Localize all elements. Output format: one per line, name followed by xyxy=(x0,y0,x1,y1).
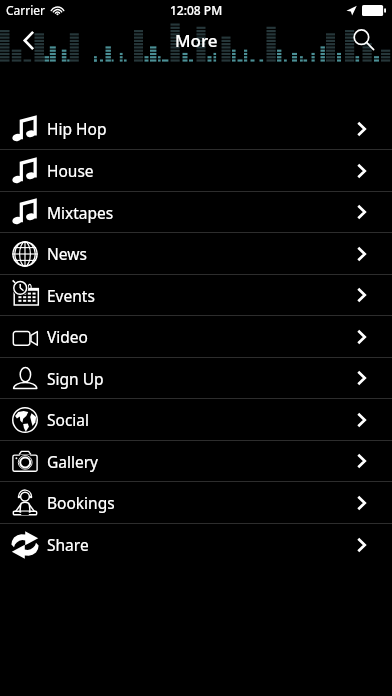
staticText: Social xyxy=(47,409,90,430)
button[interactable]: Hip Hop xyxy=(0,108,392,150)
button[interactable]: Back xyxy=(0,20,52,64)
staticText: 12:08 PM xyxy=(170,2,223,18)
staticText: Events xyxy=(47,285,95,306)
staticText: Bookings xyxy=(47,492,115,513)
button[interactable]: News xyxy=(0,233,392,275)
button[interactable]: Social xyxy=(0,399,392,441)
staticText: Share xyxy=(47,534,89,555)
button[interactable]: Bookings xyxy=(0,482,392,524)
button[interactable]: Search xyxy=(342,20,392,64)
button[interactable]: Share xyxy=(0,524,392,565)
button[interactable]: Events xyxy=(0,275,392,316)
button[interactable]: Mixtapes xyxy=(0,192,392,233)
staticText: More xyxy=(175,29,218,52)
staticText: Gallery xyxy=(47,451,99,472)
button[interactable]: Sign Up xyxy=(0,358,392,399)
staticText: Video xyxy=(47,326,88,347)
staticText: Sign Up xyxy=(47,368,104,389)
staticText: House xyxy=(47,160,94,181)
button[interactable]: Gallery xyxy=(0,441,392,482)
staticText: Carrier xyxy=(6,2,46,18)
staticText: Hip Hop xyxy=(47,118,107,139)
button[interactable]: House xyxy=(0,150,392,192)
staticText: Mixtapes xyxy=(47,202,114,223)
button[interactable]: Video xyxy=(0,316,392,358)
staticText: News xyxy=(47,243,87,264)
